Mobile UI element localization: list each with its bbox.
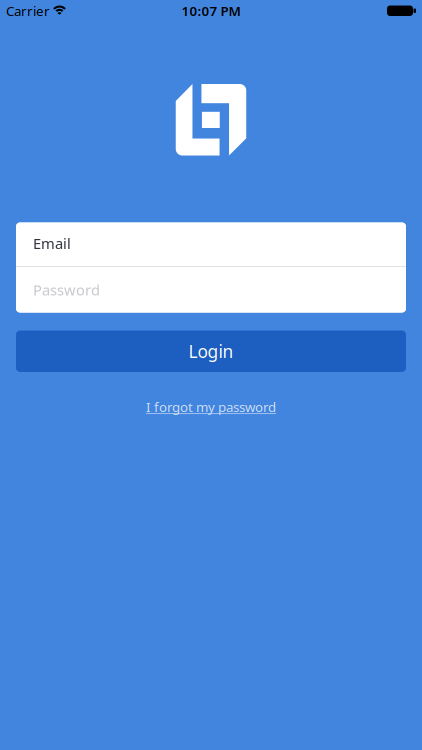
button[interactable]: Password <box>16 267 406 312</box>
button[interactable]: I forgot my password <box>146 398 276 416</box>
staticText: I forgot my password <box>146 398 276 416</box>
staticText: Carrier <box>6 2 50 20</box>
staticText: Password <box>33 280 100 299</box>
button[interactable]: Email <box>16 222 406 266</box>
staticText: Login <box>188 340 233 363</box>
staticText: 10:07 PM <box>181 2 240 20</box>
button[interactable]: Login <box>16 330 406 372</box>
staticText: Email <box>33 233 71 253</box>
